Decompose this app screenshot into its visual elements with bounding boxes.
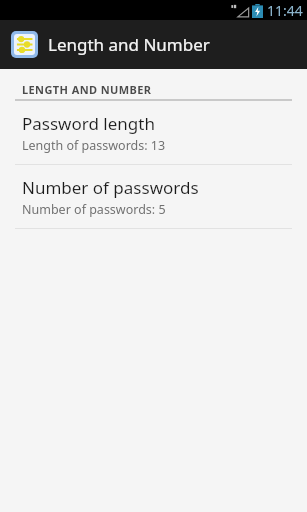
button[interactable]: Number of passwords — [0, 165, 307, 228]
button[interactable]: Password length — [0, 101, 307, 164]
staticText: LENGTH AND NUMBER — [22, 82, 152, 97]
staticText: Number of passwords: 5 — [22, 201, 166, 218]
staticText: Number of passwords — [22, 176, 199, 199]
staticText: Length and Number — [48, 33, 210, 56]
staticText: 11:44 — [267, 1, 303, 20]
staticText: Password length — [22, 112, 155, 135]
staticText: Length of passwords: 13 — [22, 137, 166, 154]
